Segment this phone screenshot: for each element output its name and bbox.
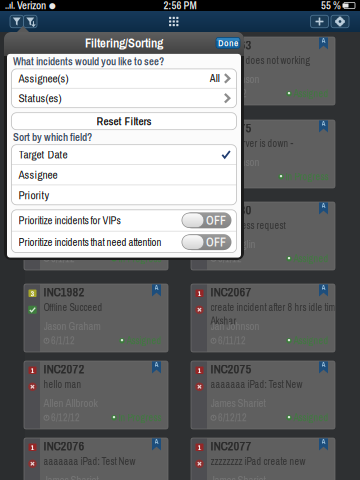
staticText: Verizon (17, 0, 46, 13)
button[interactable]: Status(es) (11, 89, 236, 108)
staticText: Status(es) (18, 91, 61, 106)
staticText: Need new monitor (43, 219, 113, 232)
staticText: Assigned (293, 252, 328, 265)
staticText: Luke Wilson (43, 237, 90, 251)
staticText: 6/11/12 (218, 334, 246, 347)
staticText: In Progress (118, 411, 161, 424)
staticText: A (154, 437, 158, 446)
staticText: 6/1/12 (51, 252, 75, 265)
staticText: printer does not work (43, 54, 123, 67)
button[interactable]: Filter and sort (10, 15, 37, 28)
staticText: 1 (197, 365, 201, 376)
staticText: Priority (18, 187, 49, 203)
staticText: Sort by which field? (13, 130, 92, 144)
staticText: INC2067 (210, 283, 251, 301)
staticText: 6/1/12 (218, 170, 242, 183)
staticText: 5/30/12 (218, 87, 247, 100)
button[interactable]: Settings (331, 15, 349, 28)
staticText: Assignee(s) (18, 71, 68, 86)
staticText: A (321, 36, 325, 45)
staticText: Reset Filters (96, 114, 151, 129)
staticText: Beth Anglin (210, 237, 255, 251)
staticText: INC1975 (210, 119, 251, 137)
staticText: Assigned (126, 87, 161, 100)
staticText: INC1982 (43, 283, 84, 301)
staticText: What incidents would you like to see? (13, 54, 164, 69)
staticText: Prioritize incidents for VIPs (18, 213, 120, 227)
staticText: INC2072 (43, 360, 84, 378)
staticText: Jan Johnson (210, 155, 259, 169)
staticText: James Shariet (43, 473, 98, 480)
staticText: A (154, 36, 158, 45)
staticText: James Shariet (210, 396, 265, 410)
staticText: OFF (206, 234, 226, 250)
staticText: A (321, 201, 325, 210)
staticText: INC1971 (43, 119, 84, 137)
staticText: Done (218, 37, 238, 49)
button[interactable]: Done (216, 37, 240, 48)
staticText: Assignee (18, 167, 57, 182)
staticText: James Shariet (210, 473, 265, 480)
staticText: Assigned (126, 334, 161, 347)
staticText: INC1963 (210, 36, 251, 54)
staticText: Prioritize incidents that need attention (18, 235, 161, 249)
staticText: zzzzzzzz iPad create new (210, 455, 305, 468)
staticText: hello man (43, 378, 81, 391)
staticText: 3 (30, 206, 34, 217)
staticText: 6/12/12 (218, 411, 247, 424)
staticText: Target Date (18, 147, 67, 162)
staticText: 3 (30, 124, 34, 135)
staticText: Wireless does not working (210, 54, 310, 67)
staticText: Don Goodliffe (43, 72, 97, 86)
staticText: 2:56 PM (163, 0, 196, 13)
staticText: VPN access request (210, 219, 285, 232)
staticText: create incident after 8 hrs idle time - (210, 301, 345, 314)
staticText: ● (49, 1, 56, 10)
staticText: Assigned (293, 334, 328, 347)
staticText: INC2076 (43, 437, 84, 455)
staticText: Sales forecast software (43, 137, 130, 150)
staticText: 5/31/12 (51, 170, 80, 183)
staticText: Jan Johnson (210, 319, 259, 333)
staticText: A (154, 283, 158, 292)
staticText: A (321, 283, 325, 292)
staticText: 2 (197, 124, 201, 135)
staticText: Akshar (210, 314, 236, 327)
staticText: OFF (206, 212, 226, 228)
staticText: Jan Johnson (210, 72, 259, 86)
button[interactable]: New incident (310, 15, 328, 28)
button[interactable]: Assignee (11, 165, 236, 184)
staticText: 55 % (321, 0, 341, 13)
staticText: INC2075 (210, 360, 251, 378)
staticText: 1 (197, 41, 201, 52)
staticText: A (154, 360, 158, 369)
button[interactable]: Prioritize incidents that need attention (11, 232, 236, 253)
button[interactable]: Target Date (11, 145, 236, 164)
button[interactable]: Assignee(s) (11, 69, 236, 88)
staticText: ..ıl. (5, 0, 15, 12)
staticText: 1 (30, 41, 34, 52)
staticText: Fred Luddy (43, 155, 87, 169)
button[interactable]: Grid view (169, 17, 178, 26)
staticText: Akshar (210, 150, 236, 163)
staticText: 1 (30, 442, 34, 453)
staticText: 1 (197, 442, 201, 453)
staticText: A (321, 360, 325, 369)
staticText: Filtering/Sorting (85, 34, 163, 51)
staticText: Assigned (293, 87, 328, 100)
staticText: Allen Allbrook (43, 396, 97, 410)
staticText: Jason Graham (43, 319, 100, 333)
staticText: 1 (197, 288, 201, 299)
button[interactable]: Priority (11, 185, 236, 205)
staticText: aaaaaaa iPad: Test New (210, 378, 302, 391)
staticText: A (154, 201, 158, 210)
staticText: A (321, 119, 325, 128)
button[interactable]: Prioritize incidents for VIPs (11, 210, 236, 231)
staticText: INC1978 (43, 201, 84, 219)
staticText: In Progress (285, 170, 328, 183)
staticText: 3 (30, 288, 34, 299)
button[interactable]: Reset Filters (11, 113, 236, 130)
staticText: INC1980 (210, 201, 251, 219)
